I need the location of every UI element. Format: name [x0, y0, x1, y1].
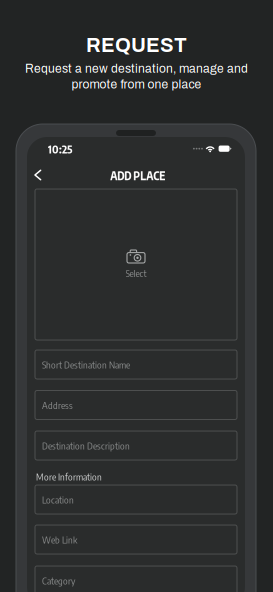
button[interactable]: Address — [35, 390, 237, 419]
staticText: ADD PLACE — [110, 168, 165, 183]
button[interactable]: Location — [35, 485, 237, 514]
button[interactable]: Select — [35, 189, 237, 340]
button[interactable]: Short Destination Name — [35, 350, 237, 379]
staticText: 10:25 — [48, 142, 72, 156]
staticText: Category — [42, 574, 75, 586]
staticText: Short Destination Name — [42, 358, 130, 370]
staticText: REQUEST — [86, 34, 187, 56]
staticText: Select — [125, 267, 146, 279]
staticText: promote from one place — [71, 78, 201, 91]
button[interactable]: Web Link — [35, 525, 237, 554]
button[interactable]: Category — [35, 566, 237, 592]
staticText: Destination Description — [42, 439, 130, 451]
staticText: Address — [42, 399, 73, 411]
staticText: Location — [42, 493, 74, 505]
staticText: Web Link — [42, 533, 77, 545]
staticText: Request a new destination, manage and — [25, 62, 248, 75]
button[interactable]: Destination Description — [35, 431, 237, 460]
button[interactable]: Back — [28, 163, 48, 186]
staticText: More Information — [36, 470, 102, 482]
